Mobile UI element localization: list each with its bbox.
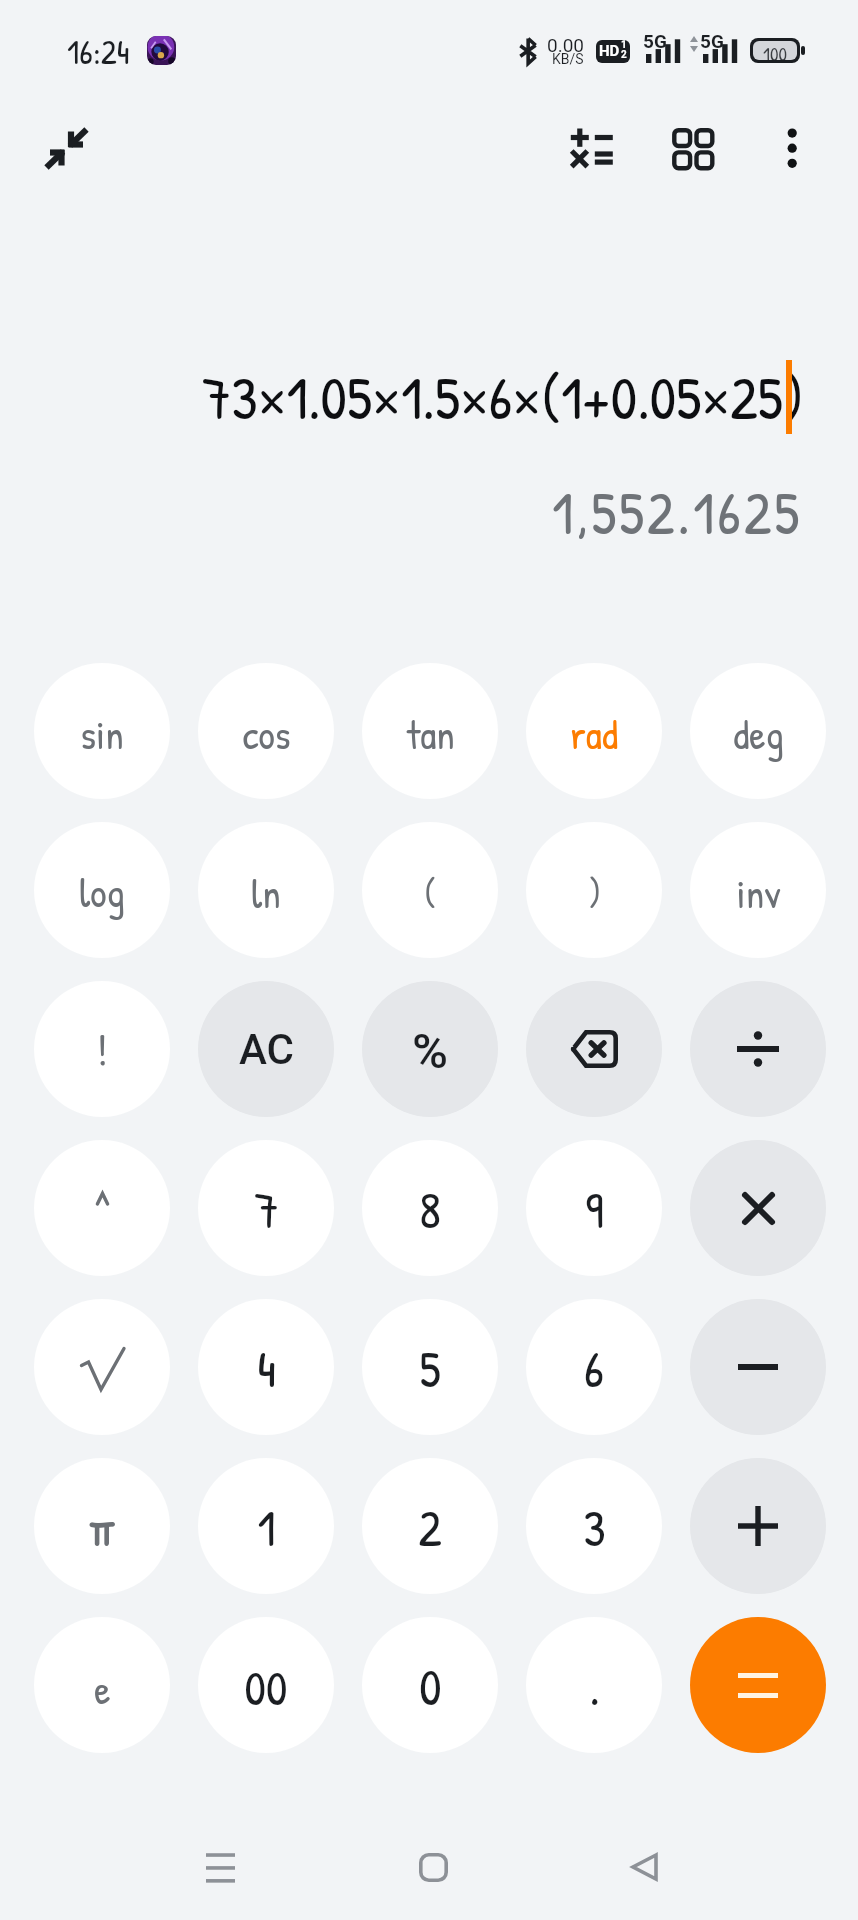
staticText: 6 [584, 1335, 604, 1403]
staticText: 0 [419, 1653, 442, 1721]
button[interactable]: Power [34, 1140, 170, 1276]
button[interactable]: 0 [362, 1617, 498, 1753]
staticText: 2 [418, 1494, 442, 1562]
staticText: ( [424, 869, 436, 916]
staticText: e [94, 1661, 111, 1717]
staticText: ) [588, 869, 601, 916]
button[interactable]: Multiply [690, 1140, 826, 1276]
staticText: rad [570, 706, 618, 762]
button[interactable]: inv [690, 822, 826, 958]
button[interactable]: Collapse [36, 118, 96, 178]
button[interactable]: cos [198, 663, 334, 799]
staticText: 5G [643, 30, 667, 52]
button[interactable]: % [362, 981, 498, 1117]
button[interactable]: π [34, 1458, 170, 1594]
button[interactable]: 8 [362, 1140, 498, 1276]
staticText: 9 [585, 1176, 604, 1244]
staticText: 00 [244, 1655, 288, 1720]
button[interactable]: Scientific mode [560, 118, 620, 178]
button[interactable]: History [662, 118, 722, 178]
staticText: % [412, 1023, 448, 1080]
staticText: 0.00 [547, 34, 585, 56]
button[interactable]: Subtract [690, 1299, 826, 1435]
staticText: 3 [583, 1494, 606, 1562]
staticText: 16:24 [67, 29, 130, 75]
button[interactable]: deg [690, 663, 826, 799]
button[interactable]: Back [602, 1825, 686, 1909]
staticText: . [589, 1653, 600, 1721]
button[interactable]: sin [34, 663, 170, 799]
button[interactable]: Divide [690, 981, 826, 1117]
button[interactable]: 4 [198, 1299, 334, 1435]
staticText: deg [733, 706, 784, 762]
button[interactable]: ( [362, 822, 498, 958]
staticText: 8 [419, 1176, 441, 1244]
staticText: cos [242, 706, 291, 762]
button[interactable]: 3 [526, 1458, 662, 1594]
button[interactable]: Add [690, 1458, 826, 1594]
staticText: π [87, 1494, 118, 1562]
staticText: AC [239, 1025, 294, 1074]
staticText: 2 [621, 49, 627, 61]
button[interactable]: AC [198, 981, 334, 1117]
staticText: sin [80, 706, 124, 762]
button[interactable]: log [34, 822, 170, 958]
staticText: 1 [257, 1494, 276, 1562]
button[interactable]: 5 [362, 1299, 498, 1435]
staticText: tan [406, 706, 455, 762]
staticText: 5 [419, 1335, 441, 1403]
staticText: inv [736, 865, 781, 921]
button[interactable]: Recents [178, 1825, 262, 1909]
button[interactable]: . [526, 1617, 662, 1753]
button[interactable]: 1 [198, 1458, 334, 1594]
button[interactable]: rad [526, 663, 662, 799]
staticText: log [79, 864, 125, 920]
staticText: ! [97, 1021, 108, 1081]
staticText: 7 [254, 1176, 279, 1244]
button[interactable]: Home [391, 1825, 475, 1909]
staticText: 100 [763, 41, 787, 60]
button[interactable]: tan [362, 663, 498, 799]
button[interactable]: 2 [362, 1458, 498, 1594]
button[interactable]: ! [34, 981, 170, 1117]
button[interactable]: Square root [34, 1299, 170, 1435]
button[interactable]: 6 [526, 1299, 662, 1435]
button[interactable]: e [34, 1617, 170, 1753]
button[interactable]: 00 [198, 1617, 334, 1753]
button[interactable]: 9 [526, 1140, 662, 1276]
button[interactable]: More options [763, 118, 823, 178]
button[interactable]: ) [526, 822, 662, 958]
staticText: HD [599, 42, 620, 60]
staticText: 5G [700, 30, 724, 52]
button[interactable]: Equals [690, 1617, 826, 1753]
button[interactable]: ln [198, 822, 334, 958]
staticText: ln [251, 865, 281, 921]
staticText: KB/S [552, 51, 584, 67]
staticText: 1 [621, 40, 627, 51]
staticText: 1,552.1625 [552, 473, 803, 553]
staticText: 73×1.05×1.5×6×(1+0.05×25) [202, 358, 805, 438]
staticText: 4 [257, 1335, 276, 1403]
button[interactable]: 7 [198, 1140, 334, 1276]
button[interactable]: Backspace [526, 981, 662, 1117]
